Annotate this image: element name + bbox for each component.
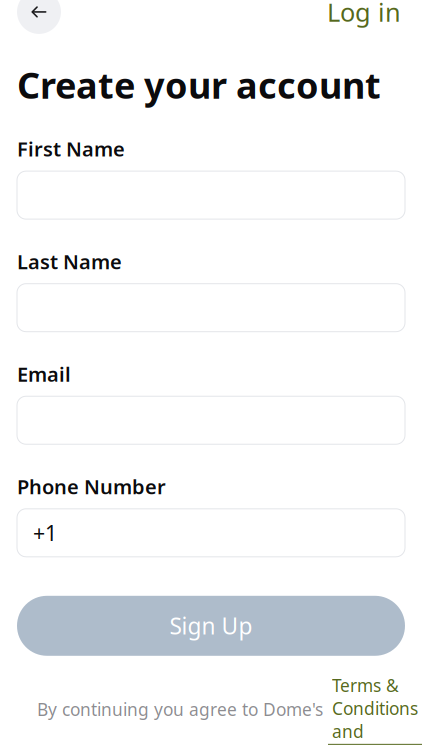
button[interactable]: Log in: [323, 0, 405, 35]
button[interactable]: Phone Number: [17, 509, 405, 557]
staticText: First Name: [17, 136, 125, 162]
button[interactable]: Back: [17, 0, 61, 34]
staticText: +1: [33, 519, 57, 547]
button[interactable]: Sign Up: [17, 596, 405, 656]
staticText: Email: [17, 361, 71, 387]
button[interactable]: Email: [17, 396, 405, 444]
button[interactable]: Last Name: [17, 284, 405, 332]
staticText: Phone Number: [17, 473, 166, 500]
staticText: By continuing you agree to Dome's: [37, 698, 328, 721]
staticText: Sign Up: [169, 611, 252, 641]
staticText: Terms & Conditions and: [332, 674, 418, 743]
staticText: Log in: [327, 0, 401, 29]
staticText: Create your account: [17, 61, 381, 109]
staticText: Last Name: [17, 248, 122, 275]
button[interactable]: Terms & Conditions and: [328, 674, 422, 745]
button[interactable]: First Name: [17, 171, 405, 219]
